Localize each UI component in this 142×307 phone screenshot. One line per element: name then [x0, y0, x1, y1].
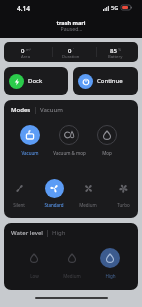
button[interactable]: Turbo [108, 179, 138, 208]
staticText: High [105, 273, 116, 279]
staticText: Vacuum [40, 106, 63, 114]
staticText: Continue [97, 77, 123, 85]
button[interactable]: Mop [90, 125, 124, 156]
button[interactable]: Dock [4, 67, 68, 95]
button[interactable]: Vacuum [13, 125, 47, 156]
button[interactable]: 85 [93, 42, 138, 62]
staticText: m² [26, 47, 31, 52]
button[interactable]: 0 [48, 42, 93, 62]
staticText: Water level [11, 229, 43, 237]
staticText: Area [21, 54, 31, 60]
staticText: % [118, 47, 122, 52]
staticText: trash mari [56, 19, 86, 27]
staticText: Modes [11, 106, 31, 114]
button[interactable]: Standard [39, 179, 69, 208]
staticText: 0 [21, 47, 25, 55]
staticText: Turbo [117, 202, 130, 208]
staticText: 5G [111, 4, 119, 11]
staticText: Duration [62, 54, 80, 60]
staticText: Standard [44, 202, 64, 208]
staticText: Vacuum & mop [53, 150, 86, 156]
staticText: Vacuum [21, 150, 39, 156]
staticText: Battery [108, 54, 123, 60]
staticText: 4.14 [17, 4, 30, 13]
staticText: Mop [102, 150, 112, 156]
staticText: Dock [28, 77, 43, 85]
staticText: Paused... [60, 25, 83, 32]
staticText: Medium [79, 202, 97, 208]
staticText: 85 [110, 47, 117, 55]
staticText: Low [30, 273, 39, 279]
staticText: Silent [13, 202, 25, 208]
staticText: 0 [68, 47, 72, 55]
staticText: ' [73, 47, 74, 52]
button[interactable]: Continue [73, 67, 138, 95]
button[interactable]: Low [17, 248, 51, 279]
button[interactable]: Medium [73, 179, 103, 208]
staticText: High [52, 229, 66, 237]
staticText: Medium [63, 273, 81, 279]
button[interactable]: Medium [55, 248, 89, 279]
button[interactable]: 0 [4, 42, 48, 62]
button[interactable]: High [93, 248, 127, 279]
button[interactable]: Silent [4, 179, 34, 208]
button[interactable]: Vacuum & mop [52, 125, 86, 156]
